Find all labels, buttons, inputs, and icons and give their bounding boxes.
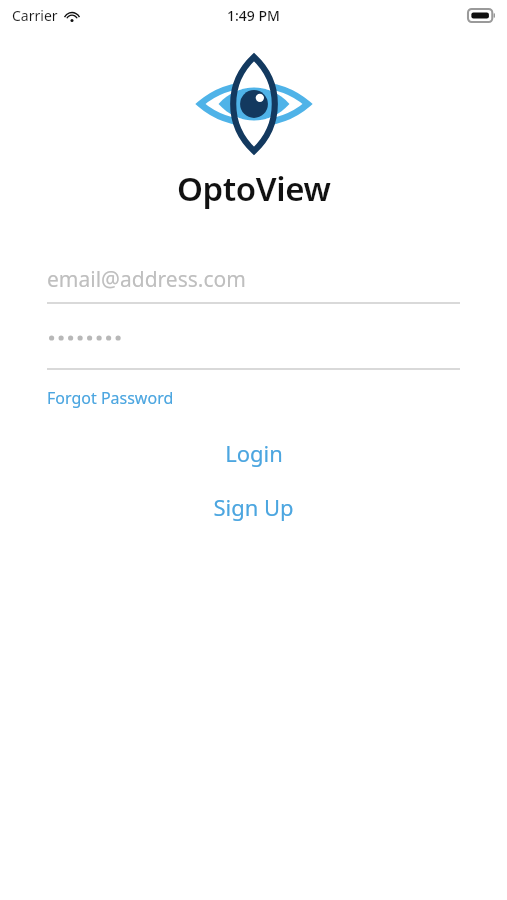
staticText: Sign Up bbox=[213, 492, 294, 522]
staticText: Login bbox=[225, 438, 283, 468]
button[interactable]: Login bbox=[0, 435, 507, 471]
staticText: Carrier bbox=[12, 6, 58, 25]
button[interactable]: email@address.com bbox=[47, 256, 460, 302]
button[interactable]: Sign Up bbox=[0, 489, 507, 525]
button[interactable]: Forgot Password bbox=[47, 387, 174, 409]
staticText: OptoView bbox=[177, 166, 331, 211]
staticText: Forgot Password bbox=[47, 387, 174, 409]
button[interactable]: Password bbox=[47, 322, 460, 354]
staticText: email@address.com bbox=[47, 265, 246, 294]
staticText: 1:49 PM bbox=[227, 6, 280, 25]
